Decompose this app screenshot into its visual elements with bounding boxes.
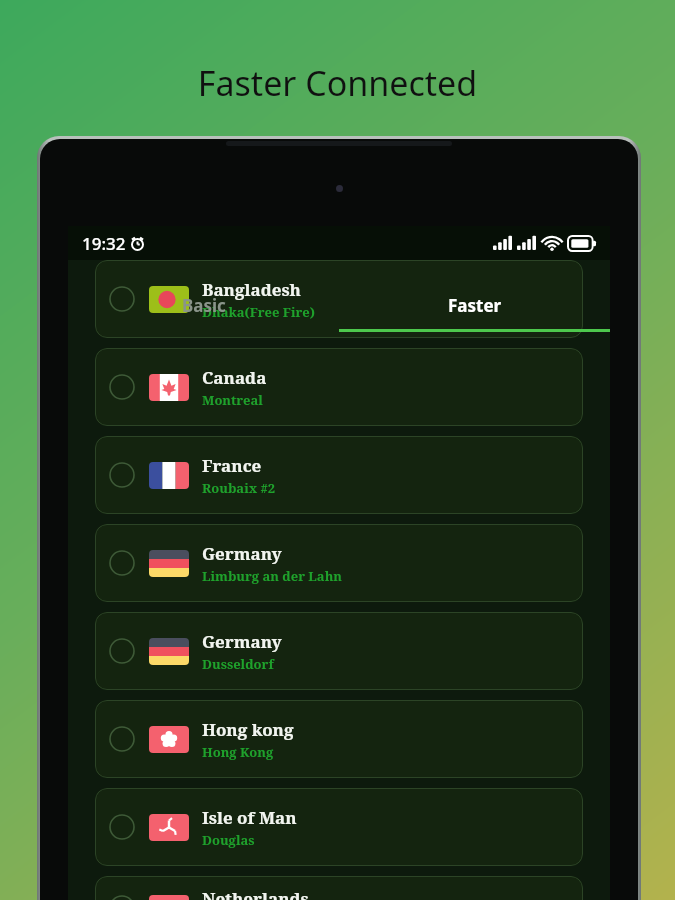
- other: Select France: [109, 462, 135, 488]
- other: Select Canada: [109, 374, 135, 400]
- staticText: Douglas: [202, 831, 255, 849]
- staticText: Faster Connected: [0, 60, 675, 106]
- button[interactable]: Select Hong kong: [95, 700, 583, 778]
- button[interactable]: Select Bangladesh: [95, 260, 583, 338]
- staticText: 19:32: [82, 232, 126, 255]
- button[interactable]: Select Isle of Man: [95, 788, 583, 866]
- staticText: Roubaix #2: [202, 479, 276, 497]
- staticText: Basic: [182, 294, 226, 317]
- staticText: Dusseldorf: [202, 655, 274, 673]
- staticText: France: [202, 454, 262, 477]
- other: Select Germany: [109, 550, 135, 576]
- staticText: Hong Kong: [202, 743, 274, 761]
- staticText: Hong kong: [202, 718, 294, 741]
- other: Select Bangladesh: [109, 286, 135, 312]
- staticText: Germany: [202, 542, 282, 565]
- button[interactable]: Select Netherlands: [95, 876, 583, 900]
- staticText: Dhaka(Free Fire): [202, 303, 315, 321]
- staticText: Faster: [448, 294, 502, 317]
- other: Select Isle of Man: [109, 814, 135, 840]
- button[interactable]: Faster: [339, 272, 610, 332]
- button[interactable]: Select Germany: [95, 524, 583, 602]
- staticText: Germany: [202, 630, 282, 653]
- button[interactable]: Basic: [68, 272, 339, 332]
- button[interactable]: Select France: [95, 436, 583, 514]
- other: Select Germany: [109, 638, 135, 664]
- button[interactable]: Select Canada: [95, 348, 583, 426]
- other: Select Netherlands: [109, 895, 135, 900]
- button[interactable]: Select Germany: [95, 612, 583, 690]
- staticText: Bangladesh: [202, 278, 301, 301]
- staticText: Netherlands: [202, 887, 309, 900]
- staticText: Canada: [202, 366, 267, 389]
- staticText: Isle of Man: [202, 806, 297, 829]
- staticText: Limburg an der Lahn: [202, 567, 343, 585]
- other: Select Hong kong: [109, 726, 135, 752]
- staticText: Montreal: [202, 391, 263, 409]
